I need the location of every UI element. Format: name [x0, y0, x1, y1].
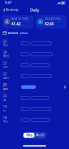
staticText: $2.65: [45, 21, 54, 26]
button[interactable]: Month: [34, 133, 45, 138]
button[interactable]: 21: [3, 83, 66, 91]
staticText: Day: [26, 133, 31, 137]
staticText: Wed: [3, 54, 9, 58]
staticText: 24: [3, 51, 7, 54]
button[interactable]: Electricity: [3, 7, 18, 13]
button[interactable]: 18: [3, 116, 66, 124]
staticText: Thu: [3, 120, 8, 123]
staticText: Bought From Grid: [45, 17, 64, 20]
staticText: Electricity: [6, 8, 18, 12]
staticText: Sun: [3, 87, 8, 91]
button[interactable]: 20: [3, 94, 66, 102]
staticText: Fri: [3, 109, 6, 112]
button[interactable]: 19: [3, 105, 66, 113]
staticText: 21: [3, 83, 7, 87]
staticText: 19: [3, 105, 7, 109]
button[interactable]: Day: [23, 133, 34, 138]
staticText: AUGUST 2022: [8, 31, 28, 35]
button[interactable]: 22: [3, 72, 66, 80]
button[interactable]: Sold To Grid: [2, 15, 33, 28]
staticText: Sold To Grid: [11, 17, 28, 20]
staticText: Mon: [3, 76, 9, 80]
staticText: 9:41: [5, 1, 12, 5]
staticText: 20: [3, 94, 7, 98]
staticText: Month: [35, 133, 44, 137]
staticText: Daily: [30, 7, 39, 13]
button[interactable]: 24: [3, 50, 66, 58]
staticText: Sat: [3, 98, 6, 101]
staticText: Tue: [3, 65, 8, 69]
staticText: 18: [3, 116, 7, 120]
staticText: $1.42: [11, 21, 20, 26]
button[interactable]: 25: [3, 39, 66, 47]
staticText: 25: [3, 40, 7, 43]
button[interactable]: 23: [3, 61, 66, 69]
staticText: 23: [3, 62, 7, 65]
staticText: Thu: [3, 43, 8, 47]
button[interactable]: Bought From Grid: [36, 15, 67, 28]
staticText: 22: [3, 73, 7, 76]
